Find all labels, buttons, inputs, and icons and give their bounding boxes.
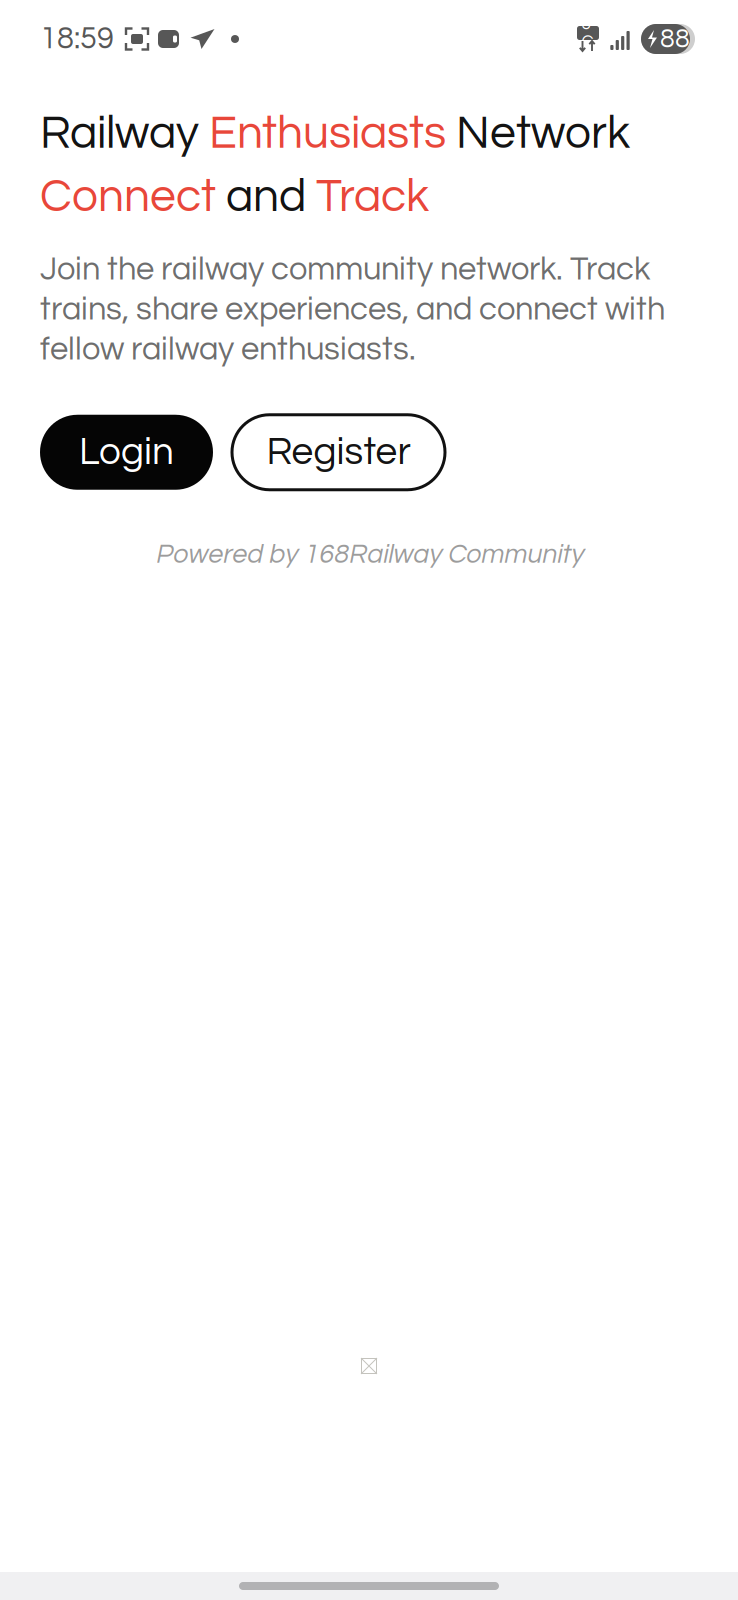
button[interactable]: Login (40, 415, 213, 490)
staticText: trains, share experiences, and connect w… (40, 293, 665, 326)
staticText: 88 (660, 25, 690, 53)
staticText: Railway (40, 110, 209, 157)
staticText: fellow railway enthusiasts. (40, 333, 416, 366)
staticText: Join the railway community network. Trac… (40, 253, 650, 286)
button[interactable]: Register (232, 415, 445, 490)
image (361, 1358, 377, 1374)
staticText: Connect (40, 173, 216, 221)
staticText: 5G (581, 15, 594, 51)
staticText: Track (316, 173, 429, 221)
staticText: and (216, 173, 316, 221)
staticText: Enthusiasts (209, 110, 446, 157)
staticText: 18:59 (40, 23, 114, 55)
staticText: Network (446, 110, 630, 157)
staticText: Login (79, 432, 174, 472)
staticText: Register (266, 432, 410, 472)
staticText: Powered by 168Railway Community (155, 541, 583, 568)
